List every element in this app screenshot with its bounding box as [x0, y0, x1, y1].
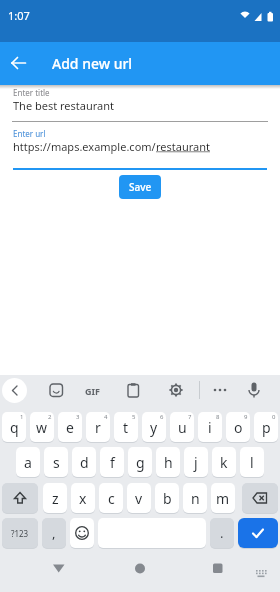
button[interactable]: [70, 518, 94, 548]
staticText: 6: [160, 413, 164, 421]
staticText: m: [216, 489, 230, 508]
staticText: 4: [104, 413, 108, 421]
button[interactable]: u: [170, 412, 194, 442]
staticText: 0: [272, 413, 276, 421]
staticText: Save: [129, 180, 152, 194]
button[interactable]: [242, 483, 278, 513]
button[interactable]: r: [86, 412, 110, 442]
staticText: 8: [216, 413, 220, 421]
button[interactable]: f: [100, 447, 124, 477]
staticText: n: [191, 489, 200, 508]
button[interactable]: s: [44, 447, 68, 477]
staticText: 7: [188, 413, 192, 421]
staticText: y: [150, 418, 158, 437]
staticText: a: [24, 453, 32, 472]
staticText: Enter url: [13, 128, 46, 139]
staticText: 5: [132, 413, 136, 421]
button[interactable]: q: [2, 412, 26, 442]
button[interactable]: n: [183, 483, 207, 513]
staticText: w: [36, 418, 48, 437]
staticText: ?123: [11, 528, 29, 539]
staticText: j: [194, 453, 198, 472]
button[interactable]: k: [212, 447, 236, 477]
staticText: d: [80, 453, 89, 472]
button[interactable]: [2, 483, 38, 513]
button[interactable]: d: [72, 447, 96, 477]
staticText: f: [110, 453, 115, 472]
staticText: t: [123, 418, 129, 437]
staticText: h: [164, 453, 173, 472]
staticText: 3: [76, 413, 80, 421]
button[interactable]: w: [30, 412, 54, 442]
button[interactable]: l: [240, 447, 264, 477]
staticText: l: [250, 453, 254, 472]
staticText: k: [220, 453, 228, 472]
button[interactable]: c: [99, 483, 123, 513]
staticText: s: [53, 453, 60, 472]
button[interactable]: m: [211, 483, 235, 513]
button[interactable]: y: [142, 412, 166, 442]
staticText: v: [135, 489, 143, 508]
staticText: Enter title: [13, 87, 50, 98]
staticText: o: [234, 418, 243, 437]
button[interactable]: Save: [119, 175, 161, 199]
staticText: 2: [48, 413, 52, 421]
staticText: GIF: [85, 385, 100, 397]
button[interactable]: [238, 518, 278, 548]
button[interactable]: x: [71, 483, 95, 513]
staticText: .: [220, 524, 224, 542]
button[interactable]: [2, 378, 27, 403]
button[interactable]: a: [16, 447, 40, 477]
button[interactable]: .: [210, 518, 234, 548]
staticText: restaurant: [156, 139, 210, 154]
staticText: 1: [20, 413, 24, 421]
staticText: g: [136, 453, 145, 472]
button[interactable]: g: [128, 447, 152, 477]
staticText: Add new url: [52, 54, 133, 73]
button[interactable]: j: [184, 447, 208, 477]
button[interactable]: i: [198, 412, 222, 442]
button[interactable]: ?123: [2, 518, 38, 548]
button[interactable]: o: [226, 412, 250, 442]
staticText: q: [10, 418, 19, 437]
staticText: x: [79, 489, 87, 508]
staticText: 9: [244, 413, 248, 421]
staticText: u: [178, 418, 187, 437]
staticText: ,: [52, 524, 56, 542]
staticText: z: [52, 489, 59, 508]
button[interactable]: b: [155, 483, 179, 513]
staticText: https://maps.example.com/: [13, 139, 156, 154]
staticText: c: [108, 489, 115, 508]
staticText: p: [262, 418, 271, 437]
button[interactable]: [6, 50, 32, 76]
staticText: b: [163, 489, 172, 508]
button[interactable]: ,: [42, 518, 66, 548]
button[interactable]: e: [58, 412, 82, 442]
button[interactable]: h: [156, 447, 180, 477]
staticText: The best restaurant: [13, 98, 115, 113]
staticText: 1:07: [8, 8, 30, 23]
staticText: e: [66, 418, 74, 437]
button[interactable]: z: [43, 483, 67, 513]
staticText: r: [95, 418, 101, 437]
button[interactable]: p: [254, 412, 278, 442]
staticText: i: [208, 418, 212, 437]
button[interactable]: v: [127, 483, 151, 513]
button[interactable]: t: [114, 412, 138, 442]
